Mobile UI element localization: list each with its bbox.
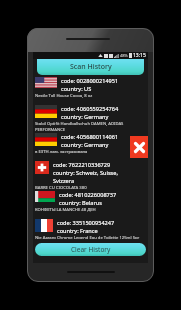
button[interactable]: Clear History xyxy=(35,243,146,256)
button[interactable]: code: 4810226008737 xyxy=(33,191,148,219)
staticText: code: 0028000214951 xyxy=(61,77,119,85)
staticText: 13:15 xyxy=(133,52,146,59)
staticText: country: Germany xyxy=(61,113,109,121)
staticText: code: 4060559254764 xyxy=(61,105,119,113)
staticText: Stabil Optifit Handballschuh DAMEN, ADID… xyxy=(35,121,141,132)
button[interactable]: code: 4056800114061 xyxy=(33,133,148,161)
button[interactable]: Delete entry xyxy=(130,136,148,158)
staticText: country: France xyxy=(57,227,98,235)
staticText: country: Germany xyxy=(61,141,109,149)
button[interactable]: code: 0028000214951 xyxy=(33,77,148,105)
staticText: в ЕЗТН лаю. застрахована xyxy=(35,149,88,155)
staticText: country: Schweiz, Suisse, Svizzera xyxy=(53,169,118,185)
staticText: code: 7622210336729 xyxy=(53,161,111,169)
staticText: code: 4810226008737 xyxy=(59,191,117,199)
staticText: Clear History xyxy=(71,245,111,254)
staticText: BARRE CU CIOCOLATA 380 xyxy=(35,185,87,191)
button[interactable]: code: 3351500954247 xyxy=(33,219,148,239)
staticText: country: US xyxy=(61,85,92,93)
staticText: country: Belarus xyxy=(59,199,102,207)
staticText: Nestle Toll House Cocoa, 8 oz xyxy=(35,93,93,99)
button[interactable]: Scan History xyxy=(37,59,144,75)
button[interactable]: code: 7622210336729 xyxy=(33,161,148,191)
staticText: 48% xyxy=(120,53,128,58)
button[interactable]: code: 4060559254764 xyxy=(33,105,148,133)
staticText: code: 4056800114061 xyxy=(61,133,119,141)
staticText: code: 3351500954247 xyxy=(57,219,115,227)
staticText: Scan History xyxy=(70,62,112,72)
staticText: Nie Azzaro Chrome Legend Eau de Toilette… xyxy=(35,235,140,239)
staticText: КОНФЕТЫ LA MANCHE 48 ДЕН xyxy=(35,207,96,213)
